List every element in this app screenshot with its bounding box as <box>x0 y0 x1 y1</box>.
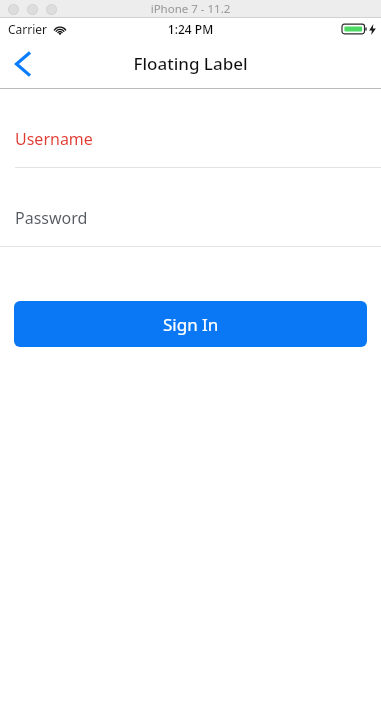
staticText: 1:24 PM <box>0 21 381 37</box>
button[interactable]: Back <box>0 42 44 86</box>
button[interactable]: Username <box>0 128 381 168</box>
staticText: Floating Label <box>0 52 381 75</box>
staticText: iPhone 7 - 11.2 <box>0 1 381 17</box>
staticText: Carrier <box>8 21 48 37</box>
staticText: Username <box>15 128 93 150</box>
staticText: Password <box>15 207 88 229</box>
button[interactable]: Password <box>0 207 381 247</box>
button[interactable]: Sign In <box>14 301 367 347</box>
staticText: Sign In <box>163 313 219 336</box>
